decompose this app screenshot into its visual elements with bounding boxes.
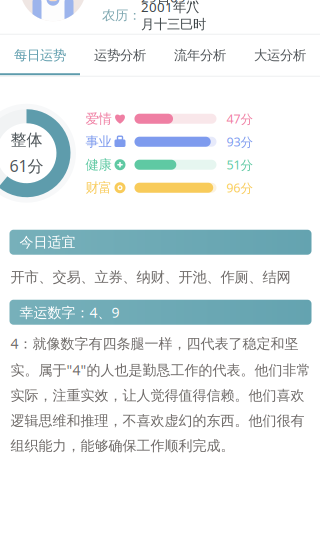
staticText: 健康 — [85, 156, 111, 173]
staticText: 开市、交易、立券、纳财、开池、作厕、结网 — [10, 268, 290, 286]
staticText: 51分 — [226, 156, 253, 173]
staticText: 每日运势 — [14, 47, 66, 64]
button[interactable]: 大运分析 — [240, 35, 320, 75]
staticText: 财富 — [85, 179, 111, 196]
staticText: 农历： — [102, 7, 141, 24]
staticText: 2001年八月十三巳时 — [141, 0, 206, 33]
button[interactable]: 运势分析 — [80, 35, 160, 75]
staticText: 流年分析 — [174, 47, 226, 64]
staticText: 爱情 — [85, 110, 111, 127]
staticText: 幸运数字：4、9 — [19, 303, 119, 322]
staticText: 运势分析 — [94, 47, 146, 64]
staticText: 整体 — [10, 130, 42, 150]
staticText: 4：就像数字有四条腿一样，四代表了稳定和坚实。属于"4"的人也是勤恳工作的代表。… — [10, 334, 310, 455]
staticText: 大运分析 — [254, 47, 306, 64]
staticText: 47分 — [226, 110, 253, 127]
staticText: 61分 — [9, 155, 43, 177]
staticText: 事业 — [85, 133, 111, 150]
staticText: 今日适宜 — [19, 233, 75, 251]
staticText: 93分 — [226, 133, 253, 150]
button[interactable]: 流年分析 — [160, 35, 240, 75]
button[interactable]: 每日运势 — [0, 35, 80, 75]
staticText: 96分 — [226, 179, 253, 196]
staticText: 2001年9月29日09点 — [141, 0, 207, 6]
